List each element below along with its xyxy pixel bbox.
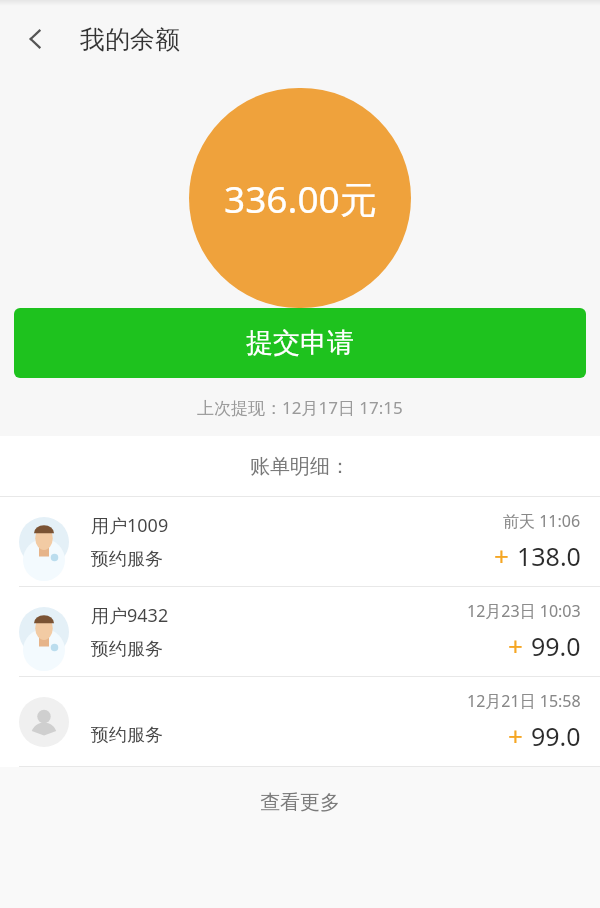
staticText: 12月21日 15:58 [467,690,581,712]
staticText: 138.0 [517,539,581,573]
staticText: 用户9432 [91,603,169,628]
staticText: 上次提现：12月17日 17:15 [197,396,403,419]
staticText: 用户1009 [91,513,169,538]
button[interactable]: 用户9432 [0,587,600,676]
staticText: 前天 11:06 [503,510,581,532]
button[interactable]: 提交申请 [14,308,586,378]
staticText: 提交申请 [246,326,354,360]
staticText: 预约服务 [91,638,163,661]
staticText: + [508,628,523,663]
staticText: 99.0 [531,719,581,753]
staticText: 336.00元 [224,173,377,224]
staticText: 账单明细： [250,454,350,479]
staticText: 查看更多 [260,790,340,815]
button[interactable]: 用户1009 [0,497,600,586]
staticText: 我的余额 [80,24,180,55]
button[interactable]: Back [12,15,60,63]
staticText: + [508,718,523,753]
button[interactable]: 预约服务 [0,677,600,766]
button[interactable]: 查看更多 [0,767,600,837]
staticText: 预约服务 [91,724,163,747]
staticText: 12月23日 10:03 [467,600,581,622]
staticText: 99.0 [531,629,581,663]
staticText: + [494,538,509,573]
staticText: 预约服务 [91,548,163,571]
